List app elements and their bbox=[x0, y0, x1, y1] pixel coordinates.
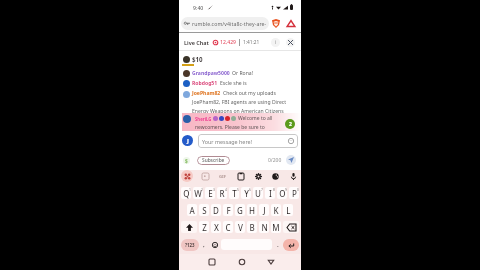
button[interactable]: V bbox=[235, 221, 245, 233]
button[interactable]: Back bbox=[265, 256, 277, 268]
button[interactable]: N bbox=[259, 221, 269, 233]
staticText: F bbox=[226, 205, 231, 216]
button[interactable]: E bbox=[205, 187, 215, 199]
button[interactable]: Stickers bbox=[200, 171, 211, 182]
staticText: 0/200 bbox=[268, 157, 282, 164]
staticText: W bbox=[194, 188, 202, 199]
button[interactable]: C bbox=[223, 221, 233, 233]
button[interactable]: Z bbox=[199, 221, 209, 233]
staticText: 3 bbox=[213, 187, 215, 192]
staticText: 9 bbox=[285, 187, 287, 192]
staticText: Or Rona! bbox=[232, 70, 254, 77]
staticText: SheriLG bbox=[195, 116, 212, 122]
button[interactable]: D bbox=[211, 204, 221, 216]
button[interactable]: W bbox=[193, 187, 203, 199]
button[interactable]: Theme bbox=[270, 171, 281, 182]
button[interactable]: Home bbox=[236, 256, 248, 268]
staticText: S bbox=[202, 205, 207, 216]
button[interactable]: P bbox=[289, 187, 299, 199]
staticText: T bbox=[232, 188, 237, 199]
button[interactable]: Settings bbox=[253, 171, 264, 182]
staticText: P bbox=[292, 188, 297, 199]
staticText: rumble.com/v4ita8c-they-are- bbox=[192, 20, 267, 27]
button[interactable]: X bbox=[211, 221, 221, 233]
button[interactable]: SheriLG bbox=[182, 113, 301, 131]
button[interactable]: U bbox=[253, 187, 263, 199]
staticText: . bbox=[277, 241, 279, 249]
button[interactable]: O bbox=[277, 187, 287, 199]
staticText: H bbox=[249, 205, 255, 216]
button[interactable]: I bbox=[265, 187, 275, 199]
button[interactable]: Grandpaw5000 bbox=[183, 68, 297, 78]
staticText: R bbox=[219, 188, 225, 199]
button[interactable]: Q bbox=[181, 187, 191, 199]
staticText: G bbox=[237, 205, 243, 216]
button[interactable]: S bbox=[199, 204, 209, 216]
button[interactable]: Enter bbox=[283, 239, 299, 251]
staticText: C bbox=[225, 222, 231, 233]
staticText: i bbox=[275, 39, 277, 46]
button[interactable]: Info bbox=[271, 38, 280, 47]
button[interactable]: Brave shields bbox=[270, 18, 281, 29]
button[interactable]: A bbox=[187, 204, 197, 216]
button[interactable]: Backspace bbox=[283, 221, 299, 233]
staticText: newcomers. Please be sure to bbox=[195, 124, 265, 131]
staticText: Live Chat bbox=[184, 39, 209, 46]
staticText: A bbox=[189, 205, 195, 216]
button[interactable]: JoePham82 bbox=[183, 90, 297, 115]
button[interactable]: G bbox=[235, 204, 245, 216]
staticText: 6 bbox=[249, 187, 251, 192]
button[interactable]: rumble.com/v4ita8c-they-are- bbox=[181, 17, 269, 30]
button[interactable]: K bbox=[271, 204, 281, 216]
button[interactable]: Shift bbox=[181, 221, 197, 233]
staticText: Q bbox=[183, 188, 190, 199]
button[interactable]: Subscribe bbox=[197, 156, 230, 165]
staticText: 1 bbox=[189, 187, 191, 192]
staticText: L bbox=[286, 205, 291, 216]
staticText: 7 bbox=[261, 187, 263, 192]
button[interactable]: Period bbox=[272, 239, 283, 250]
button[interactable]: F bbox=[223, 204, 233, 216]
button[interactable]: J bbox=[259, 204, 269, 216]
button[interactable]: Clipboard bbox=[235, 171, 246, 182]
button[interactable]: Send bbox=[286, 155, 296, 165]
button[interactable]: Keyboard settings bbox=[181, 170, 193, 182]
button[interactable]: Y bbox=[241, 187, 251, 199]
button[interactable]: R bbox=[217, 187, 227, 199]
staticText: D bbox=[213, 205, 219, 216]
staticText: $10 bbox=[192, 55, 203, 63]
button[interactable]: GIF bbox=[217, 171, 228, 182]
staticText: X bbox=[214, 222, 219, 233]
staticText: JoePham82 bbox=[192, 90, 221, 97]
button[interactable]: Robdog51 bbox=[183, 78, 297, 88]
staticText: V bbox=[238, 222, 243, 233]
button[interactable]: Voice input bbox=[288, 171, 299, 182]
staticText: 12,429 bbox=[220, 39, 236, 46]
button[interactable]: Your message here! bbox=[198, 134, 298, 148]
staticText: 4 bbox=[225, 187, 227, 192]
staticText: 2 bbox=[289, 121, 292, 128]
button[interactable]: New messages bbox=[285, 119, 295, 129]
button[interactable]: Recents bbox=[206, 256, 218, 268]
staticText: K bbox=[273, 205, 279, 216]
button[interactable]: H bbox=[247, 204, 257, 216]
staticText: I bbox=[269, 188, 272, 199]
button[interactable]: ?123 bbox=[181, 239, 199, 251]
staticText: B bbox=[249, 222, 255, 233]
staticText: Grandpaw5000 bbox=[192, 70, 230, 77]
button[interactable]: T bbox=[229, 187, 239, 199]
staticText: O bbox=[279, 188, 286, 199]
button[interactable]: B bbox=[247, 221, 257, 233]
button[interactable]: M bbox=[271, 221, 281, 233]
staticText: U bbox=[255, 188, 261, 199]
button[interactable]: L bbox=[283, 204, 293, 216]
staticText: Check out my uploads bbox=[223, 90, 276, 97]
button[interactable]: Close bbox=[286, 38, 295, 47]
staticText: Escle she is bbox=[220, 80, 247, 87]
button[interactable]: Menu bbox=[285, 18, 296, 29]
staticText: 8 bbox=[273, 187, 275, 192]
staticText: M bbox=[272, 222, 280, 233]
button[interactable]: Emoji bbox=[208, 239, 221, 250]
button[interactable]: Comma bbox=[199, 239, 208, 250]
